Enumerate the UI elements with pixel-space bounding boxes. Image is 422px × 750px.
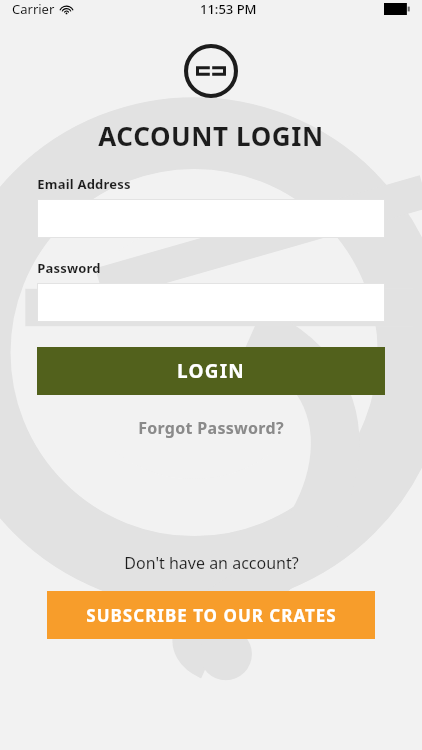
button[interactable]: LOGIN [37, 347, 385, 395]
staticText: Email Address [37, 175, 131, 193]
staticText: Don't have an account? [124, 552, 299, 574]
button[interactable]: Forgot Password? [128, 413, 294, 443]
staticText: Forgot Password? [138, 417, 284, 439]
staticText: 11:53 PM [200, 0, 257, 18]
button[interactable]: SUBSCRIBE TO OUR CRATES [47, 591, 375, 639]
button[interactable] [37, 283, 385, 322]
staticText: SUBSCRIBE TO OUR CRATES [86, 604, 337, 627]
staticText: Password [37, 259, 101, 277]
staticText: LOGIN [177, 358, 245, 384]
button[interactable] [37, 199, 385, 238]
staticText: ACCOUNT LOGIN [98, 118, 324, 153]
staticText: Carrier [12, 0, 55, 18]
